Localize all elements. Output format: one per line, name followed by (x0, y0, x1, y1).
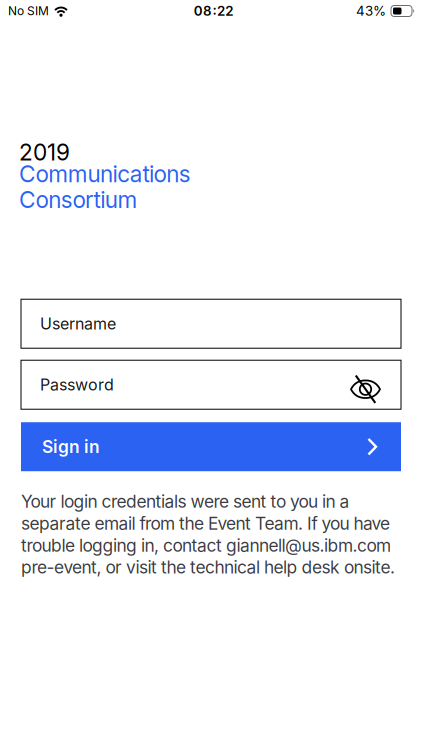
staticText: Username (40, 314, 116, 333)
staticText: Your login credentials were sent to you … (21, 491, 395, 577)
staticText: Sign in (42, 436, 100, 457)
staticText: 2019 (19, 139, 70, 166)
button[interactable]: Password (21, 360, 401, 409)
button[interactable]: Username (21, 299, 401, 348)
button[interactable]: Show password (350, 375, 381, 403)
staticText: Communications (19, 161, 191, 187)
staticText: Consortium (19, 186, 137, 213)
staticText: 08:22 (194, 3, 233, 19)
staticText: 43% (356, 3, 386, 19)
button[interactable]: Sign in (21, 422, 401, 471)
staticText: Password (40, 375, 114, 394)
staticText: No SIM (8, 4, 49, 18)
